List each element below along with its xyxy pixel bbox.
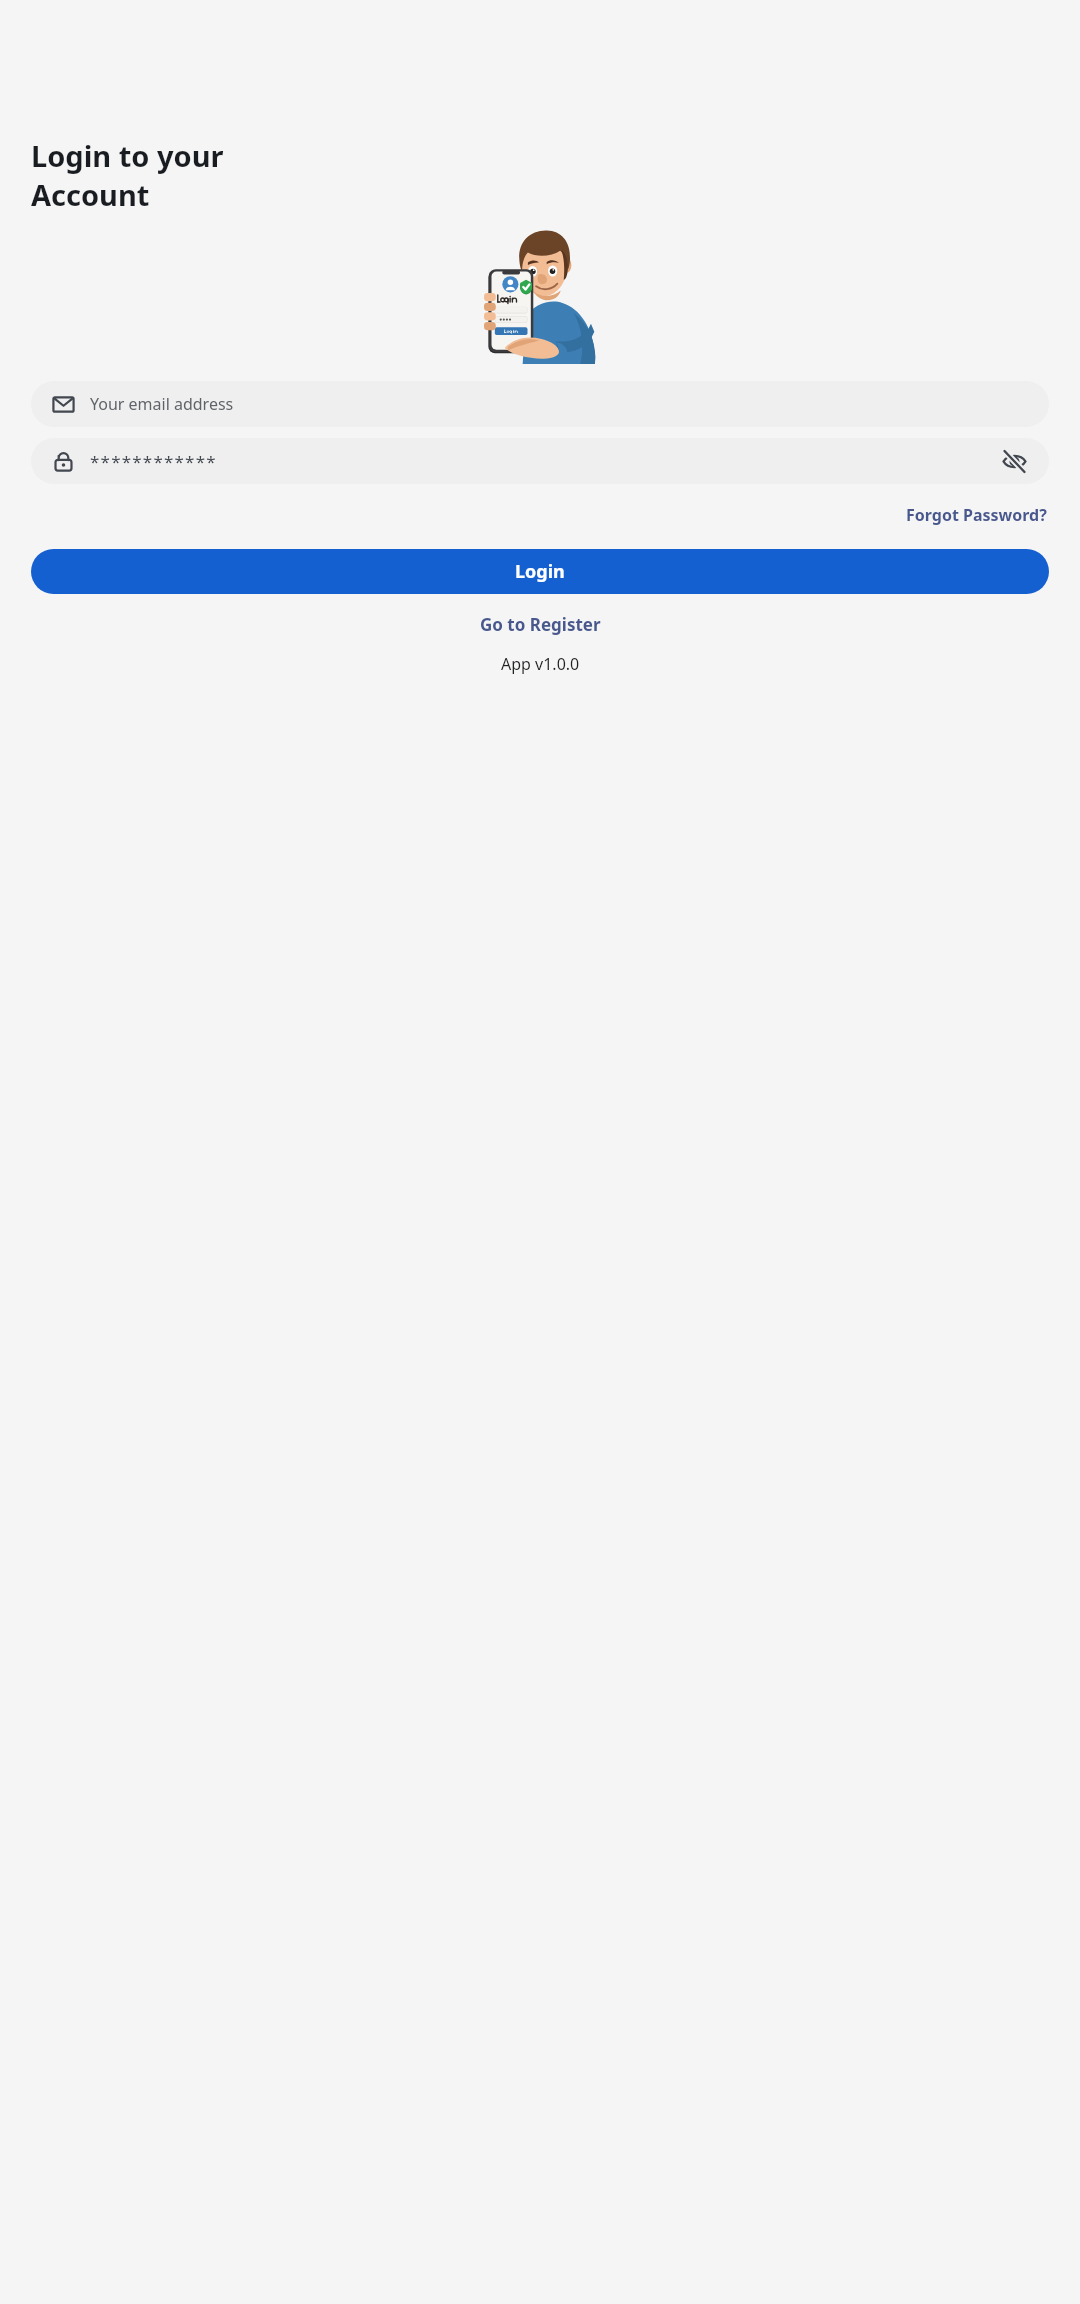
staticText: ************ — [90, 450, 997, 473]
staticText: Account — [31, 175, 150, 214]
button[interactable]: Show password — [997, 444, 1031, 478]
staticText: Your email address — [90, 393, 234, 415]
staticText: Forgot Password? — [906, 504, 1047, 526]
staticText: App v1.0.0 — [501, 653, 580, 675]
staticText: Login — [515, 559, 565, 584]
button[interactable]: ************ — [31, 438, 1049, 484]
button[interactable]: Go to Register — [472, 608, 609, 641]
button[interactable]: Forgot Password? — [904, 500, 1049, 530]
button[interactable]: Your email address — [31, 381, 1049, 427]
staticText: Go to Register — [480, 613, 601, 636]
button[interactable]: Login — [31, 549, 1049, 594]
staticText: Login to your — [31, 136, 224, 175]
